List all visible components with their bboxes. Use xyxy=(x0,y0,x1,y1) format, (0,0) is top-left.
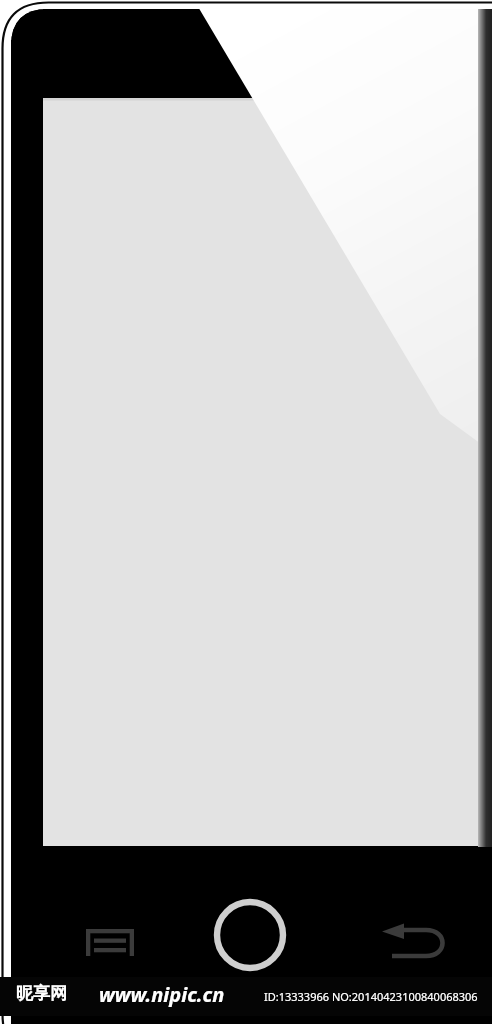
staticText: ID:13333966 NO:20140423100840068306 xyxy=(264,989,478,1004)
button[interactable]: Back xyxy=(372,908,458,964)
button[interactable]: Menu xyxy=(70,908,150,964)
button[interactable]: Home xyxy=(210,895,290,975)
staticText: www.nipic.cn xyxy=(99,981,225,1008)
staticText: 昵享网 xyxy=(16,983,67,1004)
